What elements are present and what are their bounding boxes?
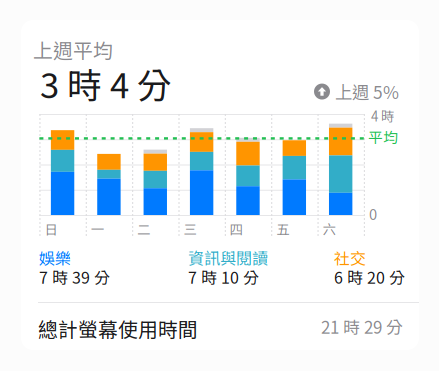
staticText: 平均 — [368, 126, 398, 147]
staticText: 總計螢幕使用時間 — [38, 314, 198, 343]
staticText: 社交 — [334, 246, 366, 269]
staticText: 資訊與閱讀 — [188, 246, 268, 269]
staticText: 娛樂 — [39, 246, 71, 269]
staticText: 六 — [322, 219, 335, 238]
staticText: 四 — [230, 219, 243, 238]
staticText: 一 — [91, 219, 104, 238]
staticText: 上週平均 — [33, 35, 113, 64]
staticText: 日 — [44, 219, 57, 238]
staticText: 三 — [183, 219, 196, 238]
staticText: 4 時 — [371, 106, 394, 125]
staticText: 7 時 39 分 — [39, 265, 110, 288]
staticText: 21 時 29 分 — [321, 314, 403, 338]
staticText: 上週 5% — [335, 79, 399, 104]
staticText: 6 時 20 分 — [334, 265, 405, 288]
staticText: 3 時 4 分 — [40, 58, 172, 108]
staticText: 7 時 10 分 — [188, 265, 259, 288]
staticText: 五 — [276, 219, 289, 238]
staticText: 0 — [369, 203, 377, 224]
staticText: 二 — [137, 219, 150, 238]
